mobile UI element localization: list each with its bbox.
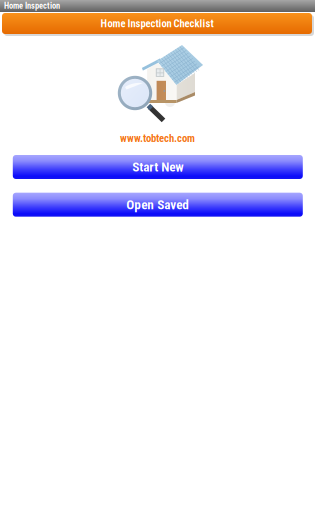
staticText: Start New bbox=[132, 159, 183, 175]
staticText: Home Inspection Checklist bbox=[100, 17, 213, 30]
button[interactable]: Start New bbox=[13, 155, 303, 179]
button[interactable]: Open Saved bbox=[13, 193, 303, 217]
staticText: www.tobtech.com bbox=[120, 132, 195, 144]
staticText: Home Inspection bbox=[4, 1, 60, 11]
staticText: Open Saved bbox=[126, 197, 189, 212]
